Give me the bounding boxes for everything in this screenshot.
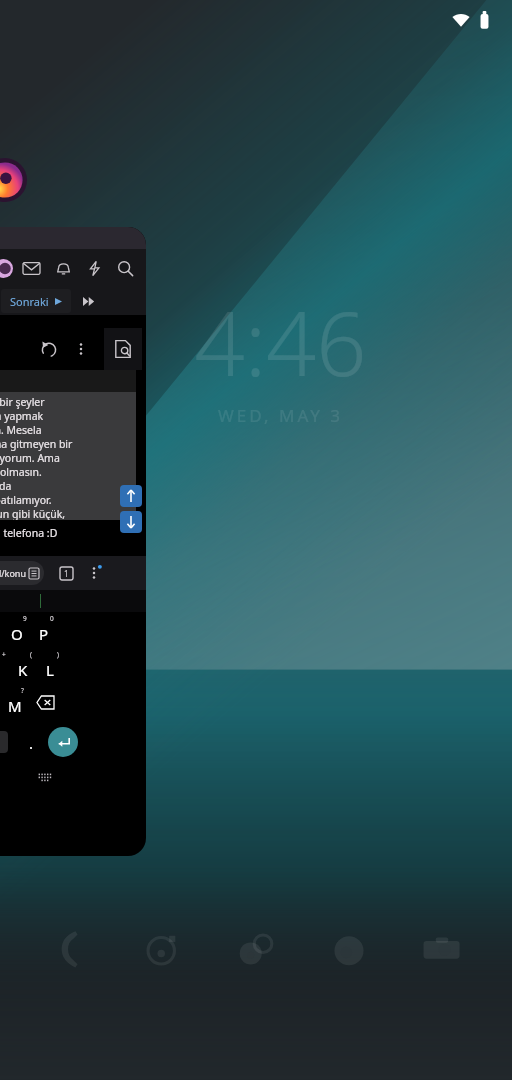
staticText: M bbox=[8, 696, 22, 716]
staticText: K bbox=[18, 660, 28, 680]
button[interactable]: Find in page bbox=[104, 328, 142, 370]
staticText: 9 bbox=[23, 614, 27, 623]
button[interactable]: ? bbox=[1, 685, 28, 719]
button[interactable]: Messages bbox=[141, 927, 185, 971]
staticText: ekli değişik bir şeyler bbox=[0, 395, 45, 409]
staticText: syal/konu bbox=[0, 567, 26, 579]
staticText: P bbox=[39, 624, 49, 644]
button[interactable]: Account bbox=[0, 259, 13, 278]
button[interactable]: Tabs bbox=[60, 567, 73, 580]
staticText: ) bbox=[57, 650, 59, 659]
button[interactable]: Phone bbox=[48, 927, 92, 971]
staticText: 4:46 bbox=[194, 282, 367, 402]
button[interactable]: Scroll down bbox=[120, 511, 142, 533]
button[interactable]: Camera bbox=[420, 927, 464, 971]
staticText: Sonraki bbox=[10, 294, 49, 309]
staticText: WED, MAY 3 bbox=[218, 404, 343, 427]
staticText: erini kullanıyorum. Ama bbox=[0, 451, 60, 465]
button[interactable]: Contacts bbox=[234, 927, 278, 971]
button[interactable]: Sonraki bbox=[10, 289, 62, 313]
staticText: çubuğu da olmasın. bbox=[0, 465, 42, 479]
button[interactable]: syal/konu bbox=[0, 561, 39, 585]
staticText: çıldırıyorum. Mesela bbox=[0, 423, 42, 437]
button[interactable]: ) bbox=[36, 649, 63, 683]
staticText: L bbox=[46, 660, 54, 680]
button[interactable]: 0 bbox=[30, 613, 57, 647]
button[interactable]: Reader mode bbox=[29, 568, 39, 579]
button[interactable]: Search bbox=[112, 255, 138, 281]
button[interactable]: Backspace bbox=[28, 685, 62, 719]
staticText: ( bbox=[30, 650, 32, 659]
staticText: bir noktada yapmak bbox=[0, 409, 44, 423]
button[interactable]: More options bbox=[74, 342, 88, 356]
button[interactable]: Menu bbox=[87, 566, 101, 580]
staticText: her telefonda bbox=[0, 479, 12, 493]
button[interactable]: Account bbox=[0, 227, 146, 856]
staticText: 1 bbox=[64, 568, 69, 579]
staticText: . bbox=[29, 733, 34, 751]
staticText: arda hoşuma gitmeyen bir bbox=[0, 437, 73, 451]
button[interactable]: 9 bbox=[3, 613, 30, 647]
staticText: yor rom atin telefona :D bbox=[0, 526, 58, 540]
button[interactable]: Firefox bbox=[327, 927, 371, 971]
button[interactable]: Enter bbox=[48, 727, 78, 757]
staticText: ? bbox=[21, 686, 24, 695]
staticText: O bbox=[11, 624, 23, 644]
button[interactable]: Scroll up bbox=[120, 485, 142, 507]
button[interactable]: Skip bbox=[83, 297, 95, 306]
button[interactable]: Mail bbox=[18, 255, 44, 281]
staticText: + bbox=[2, 650, 6, 659]
staticText: rahat. Bunun gibi küçük, bbox=[0, 507, 66, 520]
other: Firefox bbox=[0, 158, 27, 202]
button[interactable]: Switch keyboard bbox=[38, 773, 52, 782]
button[interactable]: Activity bbox=[81, 255, 107, 281]
button[interactable]: + bbox=[0, 649, 9, 683]
button[interactable]: Period bbox=[22, 733, 40, 751]
staticText: mesela, kapatılamıyor. bbox=[0, 493, 52, 507]
button[interactable]: Notifications bbox=[50, 255, 76, 281]
staticText: 0 bbox=[50, 614, 54, 623]
button[interactable]: ( bbox=[9, 649, 36, 683]
button[interactable]: Undo bbox=[38, 338, 60, 360]
button[interactable]: çe bbox=[0, 731, 8, 753]
